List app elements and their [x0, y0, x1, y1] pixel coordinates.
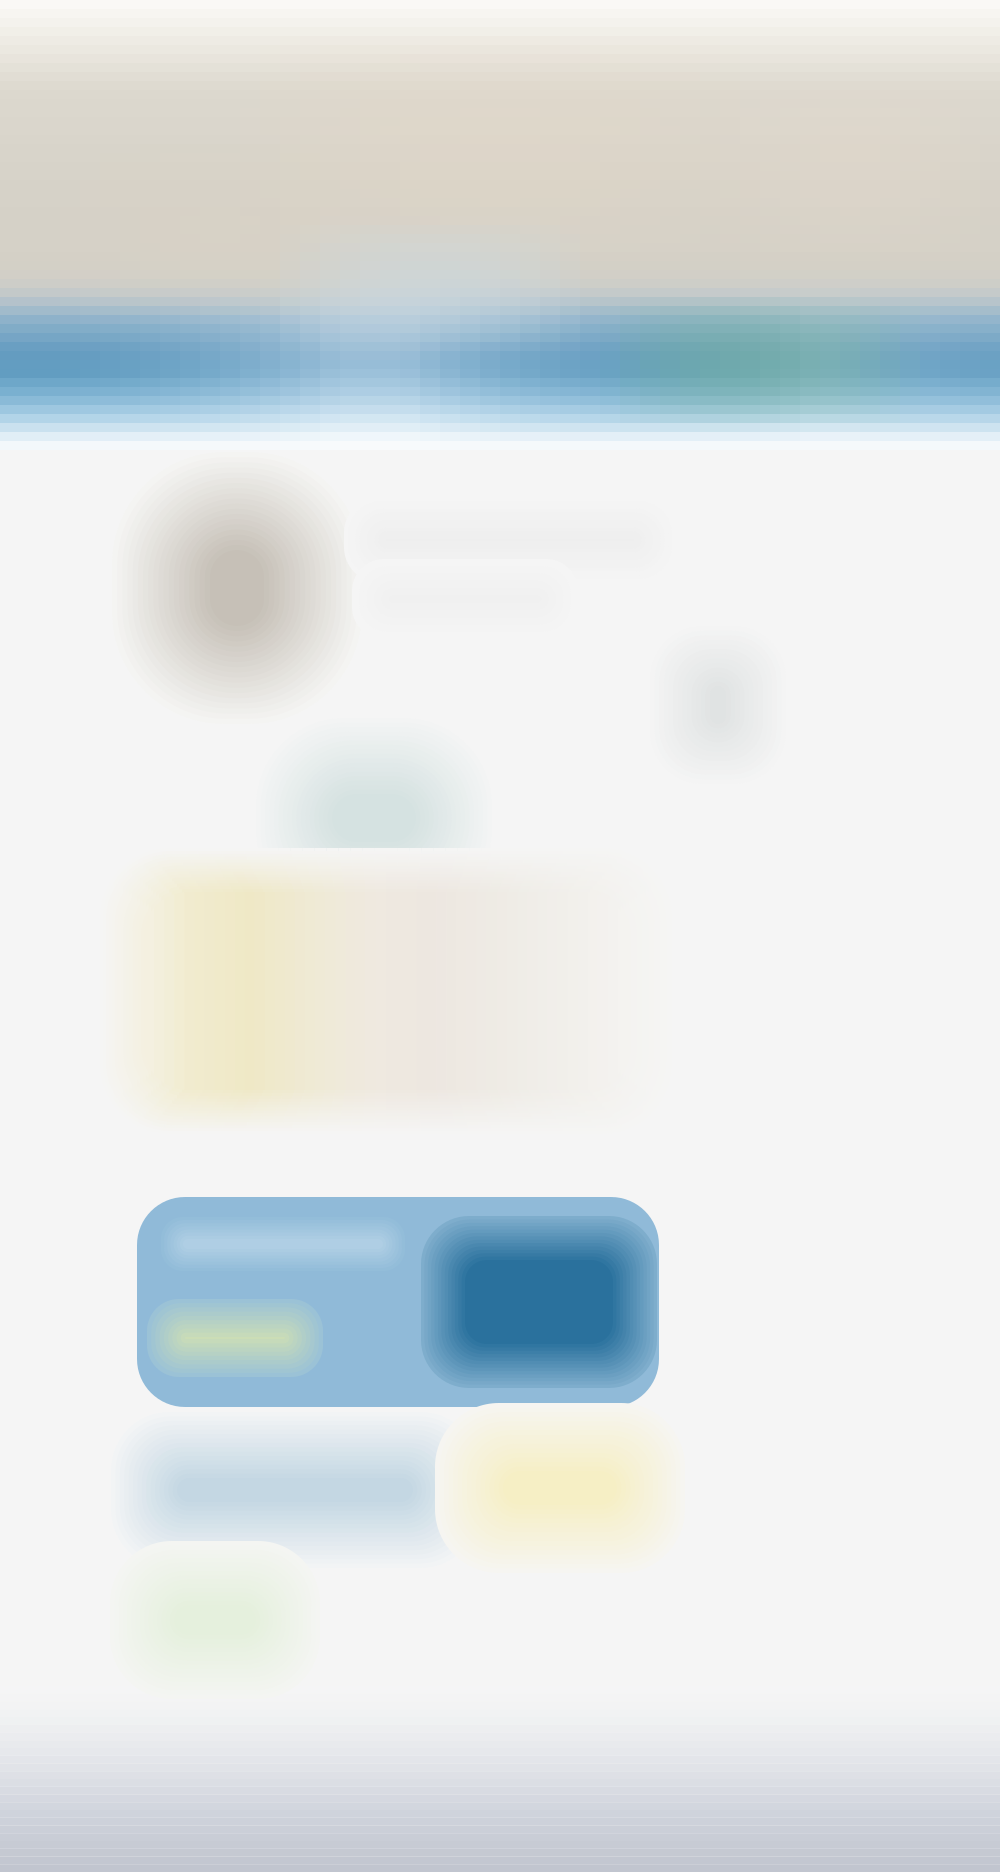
button[interactable]: Sender [112, 452, 362, 724]
button[interactable]: Tag [256, 718, 492, 918]
button[interactable]: Attachment [100, 848, 672, 1134]
button[interactable]: Tag [435, 1403, 685, 1573]
button[interactable]: Reply [111, 1412, 479, 1568]
button[interactable]: Tag [110, 1541, 320, 1699]
button[interactable]: Featured card [137, 1197, 659, 1407]
button[interactable]: Status [650, 626, 786, 784]
